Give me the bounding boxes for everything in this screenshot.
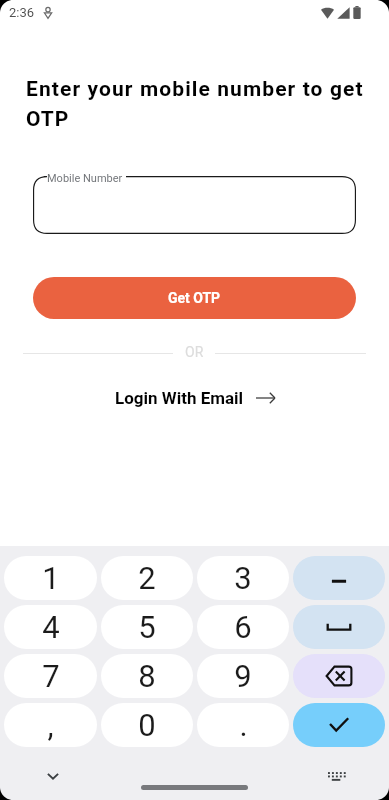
staticText: . <box>239 707 248 743</box>
button[interactable]: 9 <box>197 654 289 698</box>
button[interactable]: 0 <box>101 703 193 747</box>
button[interactable]: . <box>197 703 289 747</box>
button[interactable]: Backspace <box>293 654 385 698</box>
staticText: 7 <box>42 658 60 694</box>
button[interactable]: 2 <box>101 556 193 600</box>
button[interactable]: Login With Email <box>107 384 283 412</box>
staticText: , <box>47 707 54 743</box>
button[interactable]: 3 <box>197 556 289 600</box>
button[interactable]: 4 <box>4 605 97 649</box>
button[interactable]: Get OTP <box>33 277 356 319</box>
staticText: 2:36 <box>9 5 35 20</box>
staticText: 3 <box>234 560 252 596</box>
button[interactable]: , <box>4 703 97 747</box>
button[interactable]: Hide keyboard <box>36 759 70 793</box>
button[interactable]: 7 <box>4 654 97 698</box>
staticText: 8 <box>138 658 156 694</box>
staticText: 9 <box>234 658 252 694</box>
button[interactable]: Enter <box>293 703 385 747</box>
button[interactable]: 5 <box>101 605 193 649</box>
button[interactable]: 8 <box>101 654 193 698</box>
button[interactable]: Minus <box>293 556 385 600</box>
button[interactable]: Space <box>293 605 385 649</box>
staticText: Mobile Number <box>47 172 123 185</box>
staticText: 5 <box>138 609 156 645</box>
button[interactable]: 6 <box>197 605 289 649</box>
button[interactable]: Switch keyboard <box>319 760 353 794</box>
staticText: 4 <box>42 609 60 645</box>
staticText: 6 <box>234 609 252 645</box>
staticText: 1 <box>42 560 60 596</box>
staticText: 0 <box>138 707 156 743</box>
staticText: Login With Email <box>115 388 244 408</box>
staticText: Get OTP <box>168 290 221 306</box>
staticText: Enter your mobile number to get OTP <box>26 77 377 131</box>
staticText: OR <box>185 344 204 360</box>
staticText: 2 <box>138 560 156 596</box>
button[interactable]: 1 <box>4 556 97 600</box>
